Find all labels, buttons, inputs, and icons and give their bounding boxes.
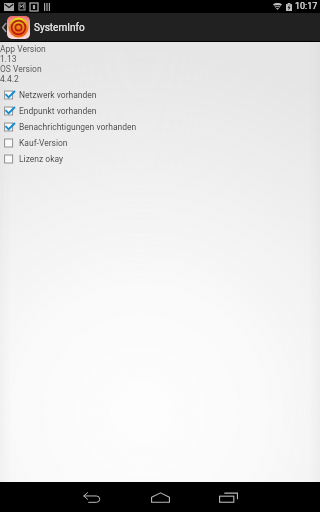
staticText: App Version [0,44,46,54]
button[interactable]: Back [83,482,102,512]
button[interactable]: Home [151,482,170,512]
staticText: Benachrichtigungen vorhanden [19,122,137,132]
button[interactable]: Kauf-Version [0,135,320,151]
button[interactable]: Endpunkt vorhanden [0,103,320,119]
staticText: SystemInfo [34,22,85,34]
staticText: 1.13 [0,54,17,64]
staticText: OS Version [0,64,42,74]
button[interactable]: Netzwerk vorhanden [0,87,320,103]
button[interactable]: Benachrichtigungen vorhanden [0,119,320,135]
button[interactable]: Recents [219,482,238,512]
staticText: 4.4.2 [0,74,19,84]
staticText: Lizenz okay [19,154,64,164]
staticText: Kauf-Version [19,138,68,148]
button[interactable]: Navigate up, SystemInfo [0,13,320,42]
button[interactable]: Lizenz okay [0,151,320,167]
staticText: 10:17 [295,1,318,12]
staticText: Netzwerk vorhanden [19,90,97,100]
staticText: Endpunkt vorhanden [19,106,97,116]
